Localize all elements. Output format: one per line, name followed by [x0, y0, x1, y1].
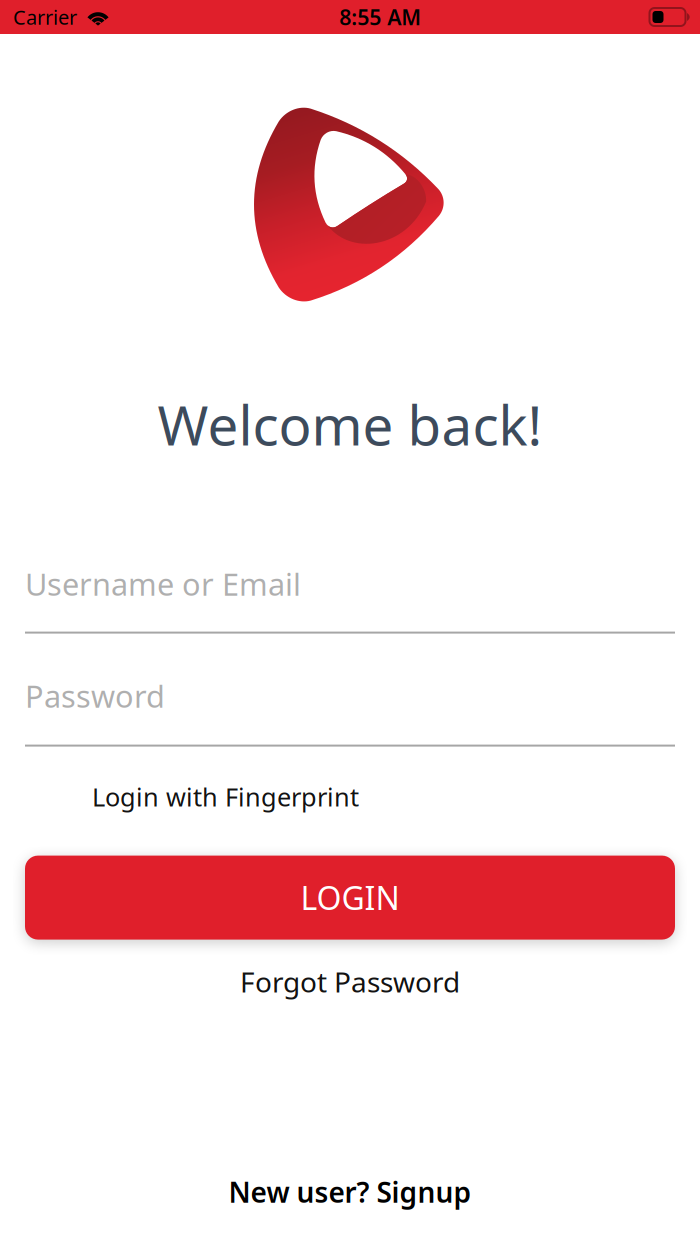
staticText: Welcome back! [157, 388, 542, 461]
staticText: LOGIN [300, 876, 399, 919]
staticText: Password [25, 676, 165, 716]
button[interactable]: Password [25, 676, 675, 747]
button[interactable]: Login with Fingerprint [0, 780, 700, 814]
staticText: Forgot Password [240, 963, 460, 1000]
button[interactable]: Forgot Password [240, 963, 460, 1001]
staticText: New user? Signup [228, 1173, 471, 1211]
staticText: 8:55 AM [339, 3, 421, 31]
staticText: Login with Fingerprint [92, 780, 359, 813]
button[interactable]: Username or Email [25, 564, 675, 634]
staticText: Carrier [13, 4, 77, 30]
button[interactable]: New user? Signup [228, 1173, 471, 1211]
staticText: Username or Email [25, 564, 301, 604]
button[interactable]: LOGIN [25, 856, 675, 940]
